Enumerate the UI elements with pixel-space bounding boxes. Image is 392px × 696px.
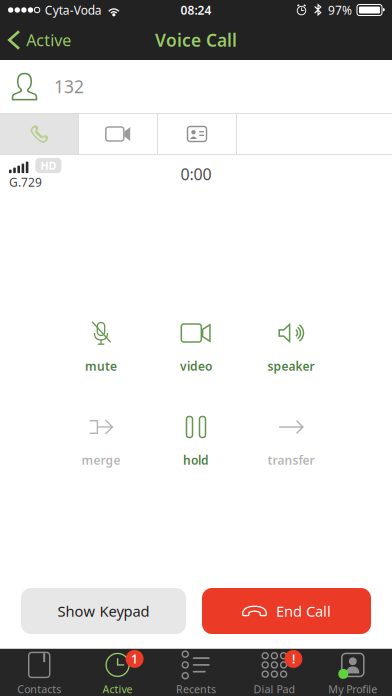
staticText: My Profile bbox=[328, 682, 377, 696]
staticText: 1 bbox=[131, 651, 138, 667]
staticText: Show Keypad bbox=[57, 601, 149, 621]
button[interactable]: Video bbox=[79, 114, 157, 154]
button[interactable]: speaker bbox=[243, 321, 338, 374]
staticText: merge bbox=[81, 452, 120, 468]
button[interactable]: mute bbox=[53, 321, 148, 374]
button[interactable]: ! bbox=[235, 649, 314, 696]
button[interactable]: Show Keypad bbox=[21, 588, 186, 634]
staticText: ! bbox=[292, 651, 295, 667]
staticText: Cyta-Voda bbox=[45, 2, 102, 18]
staticText: Voice Call bbox=[155, 28, 237, 51]
staticText: 132 bbox=[54, 75, 84, 98]
button[interactable]: Recents bbox=[157, 649, 235, 696]
button[interactable]: Active bbox=[0, 23, 81, 57]
staticText: G.729 bbox=[9, 174, 42, 190]
button[interactable]: Voice bbox=[0, 114, 78, 154]
button[interactable]: 1 bbox=[78, 649, 157, 696]
button[interactable]: transfer bbox=[243, 415, 338, 468]
button[interactable]: hold bbox=[148, 415, 243, 468]
button[interactable]: Contacts bbox=[0, 649, 78, 696]
staticText: 0:00 bbox=[180, 163, 211, 185]
button[interactable]: End Call bbox=[202, 588, 371, 634]
staticText: Active bbox=[26, 29, 71, 51]
staticText: Recents bbox=[176, 682, 216, 696]
staticText: End Call bbox=[276, 601, 331, 621]
button[interactable]: My Profile bbox=[314, 649, 392, 696]
staticText: 97% bbox=[328, 2, 352, 18]
staticText: speaker bbox=[267, 358, 314, 374]
staticText: mute bbox=[85, 358, 117, 374]
staticText: video bbox=[180, 358, 212, 374]
staticText: Contacts bbox=[17, 682, 61, 696]
button[interactable]: merge bbox=[53, 415, 148, 468]
staticText: hold bbox=[183, 452, 209, 468]
button[interactable]: Contact info bbox=[158, 114, 236, 154]
button[interactable]: video bbox=[148, 321, 243, 374]
staticText: Active bbox=[103, 682, 133, 696]
staticText: Dial Pad bbox=[253, 682, 295, 696]
staticText: 08:24 bbox=[180, 2, 211, 18]
staticText: transfer bbox=[267, 452, 314, 468]
staticText: HD bbox=[40, 158, 56, 173]
